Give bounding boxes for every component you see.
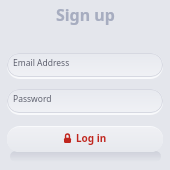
button[interactable]: Email Address (7, 53, 163, 77)
button[interactable]: Log in (7, 127, 163, 152)
staticText: Email Address (13, 57, 70, 69)
staticText: Sign up (56, 4, 115, 26)
staticText: Log in (76, 131, 107, 145)
button[interactable]: Password (7, 89, 163, 113)
staticText: Password (13, 93, 52, 105)
